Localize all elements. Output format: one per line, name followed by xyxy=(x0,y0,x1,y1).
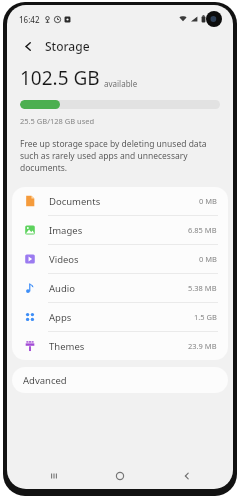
button[interactable]: Back xyxy=(167,463,207,489)
staticText: Images xyxy=(49,224,83,237)
button[interactable]: Apps xyxy=(12,303,228,331)
staticText: Videos xyxy=(49,253,79,266)
button[interactable]: Home xyxy=(100,463,140,489)
staticText: Apps xyxy=(49,311,72,324)
staticText: Storage xyxy=(45,38,90,54)
button[interactable]: Recent apps xyxy=(34,463,74,489)
button[interactable]: Audio xyxy=(12,274,228,302)
staticText: 6.85 MB xyxy=(188,225,217,235)
staticText: 0 MB xyxy=(199,196,217,206)
staticText: Free up storage space by deleting unused… xyxy=(20,138,220,174)
staticText: 0 MB xyxy=(199,254,217,264)
button[interactable]: Themes xyxy=(12,332,228,360)
staticText: 5.38 MB xyxy=(188,283,217,293)
staticText: available xyxy=(104,78,138,89)
button[interactable]: Images xyxy=(12,216,228,244)
staticText: Themes xyxy=(49,340,85,353)
staticText: Audio xyxy=(49,282,75,295)
staticText: 16:42 xyxy=(19,14,40,25)
staticText: 23.9 MB xyxy=(188,341,217,351)
button[interactable]: Videos xyxy=(12,245,228,273)
staticText: 102.5 GB xyxy=(20,65,100,91)
staticText: 1.5 GB xyxy=(194,312,217,322)
button[interactable]: Documents xyxy=(12,187,228,215)
staticText: Advanced xyxy=(23,374,67,387)
staticText: 25.5 GB/128 GB used xyxy=(20,116,95,126)
button[interactable]: Back xyxy=(17,35,39,57)
button[interactable]: Advanced xyxy=(12,367,228,393)
staticText: Documents xyxy=(49,195,101,208)
